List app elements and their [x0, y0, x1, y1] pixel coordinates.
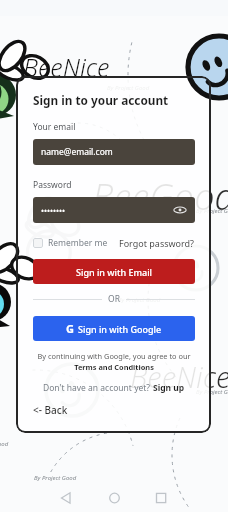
staticText: By Project Good: [196, 388, 228, 396]
staticText: BeeGood: [92, 172, 228, 221]
button[interactable]: Sign in with Email: [33, 259, 195, 284]
staticText: ••••••••: [41, 205, 66, 216]
staticText: Forgot password?: [119, 237, 195, 249]
staticText: By Project Good: [0, 440, 9, 448]
staticText: Don't have an account yet?: [43, 382, 153, 394]
button[interactable]: Terms and Conditions: [33, 362, 195, 372]
staticText: <- Back: [33, 403, 68, 417]
staticText: BeeNice: [23, 50, 110, 84]
button[interactable]: <- Back: [33, 403, 68, 417]
staticText: By Project Good: [34, 474, 77, 482]
button[interactable]: G: [33, 316, 195, 341]
staticText: By continuing with Google, you agree to …: [33, 351, 195, 361]
staticText: Sign in with Email: [76, 266, 153, 278]
other: System navigation bar: [0, 472, 228, 512]
staticText: Your email: [33, 121, 76, 133]
staticText: OR: [108, 293, 120, 305]
button[interactable]: name@email.com: [33, 139, 195, 165]
button[interactable]: Forgot password?: [119, 237, 195, 249]
staticText: Password: [33, 179, 72, 191]
staticText: By Project Good: [196, 207, 228, 215]
staticText: name@email.com: [41, 146, 113, 158]
button[interactable]: ••••••••: [33, 197, 195, 223]
button[interactable]: Sign up: [153, 382, 185, 394]
staticText: Remember me: [48, 237, 108, 249]
staticText: G: [66, 321, 74, 336]
staticText: By Project Good: [118, 296, 161, 304]
staticText: BeeNice: [130, 357, 228, 396]
button[interactable]: Show password: [173, 203, 187, 217]
button[interactable]: Remember me: [33, 237, 108, 249]
staticText: Sign in to your account: [33, 92, 169, 108]
staticText: By Project Good: [107, 84, 150, 92]
staticText: Sign in with Google: [78, 323, 162, 335]
